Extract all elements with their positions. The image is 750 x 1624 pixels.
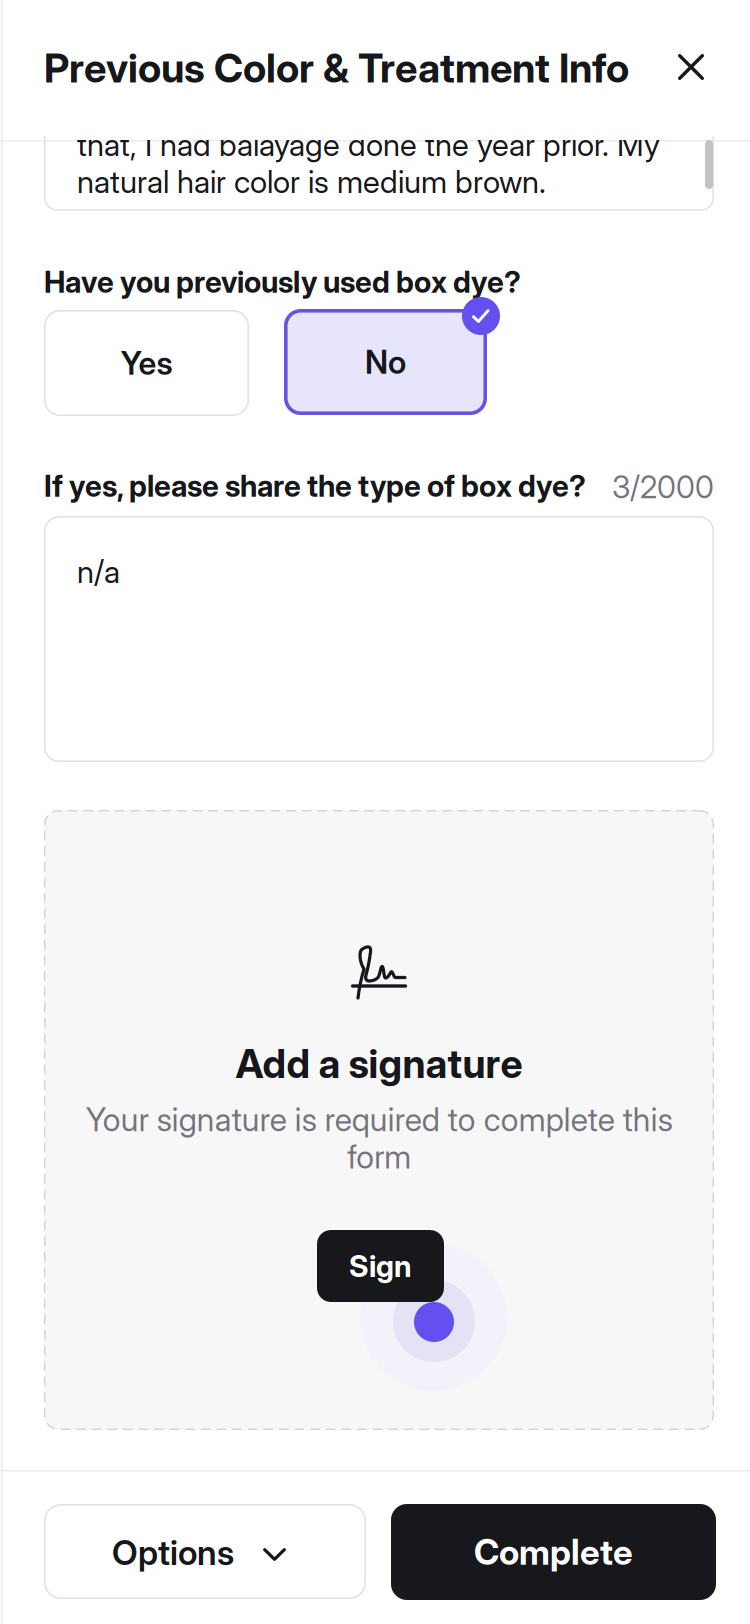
button[interactable]: Sign: [317, 1230, 444, 1302]
button[interactable]: Yes: [44, 310, 249, 416]
staticText: Options: [112, 1532, 234, 1573]
staticText: Your signature is required to complete t…: [85, 1101, 672, 1175]
button[interactable]: No: [284, 309, 487, 415]
staticText: Have you previously used box dye?: [44, 264, 521, 300]
staticText: n/a: [77, 553, 120, 591]
button[interactable]: Close: [661, 37, 721, 97]
staticText: that, I had balayage done the year prior…: [77, 126, 660, 200]
staticText: Sign: [349, 1248, 412, 1284]
staticText: Complete: [474, 1531, 633, 1573]
staticText: 3/2000: [612, 468, 714, 505]
staticText: If yes, please share the type of box dye…: [44, 468, 586, 504]
staticText: No: [365, 343, 406, 381]
staticText: Previous Color & Treatment Info: [44, 44, 629, 92]
button[interactable]: Complete: [391, 1504, 716, 1600]
staticText: Add a signature: [235, 1040, 522, 1088]
staticText: Yes: [120, 344, 172, 382]
button[interactable]: Options: [44, 1504, 366, 1599]
